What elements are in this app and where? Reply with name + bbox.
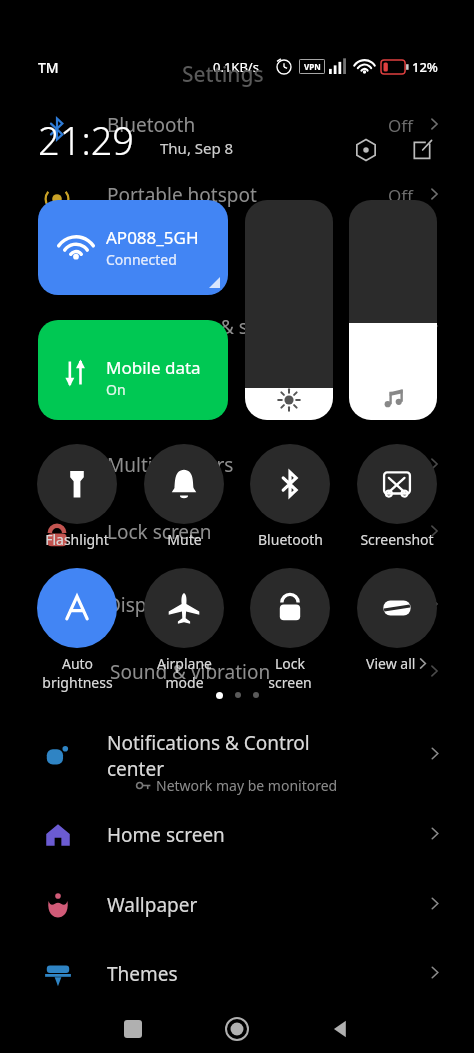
button[interactable]: Bluetooth	[250, 444, 330, 549]
staticText: Mute	[167, 530, 202, 549]
button[interactable]: View all	[357, 568, 437, 673]
staticText: Multiple users	[107, 452, 234, 478]
staticText: Sound & vibration	[110, 659, 271, 685]
button[interactable]: & sharing	[0, 310, 474, 350]
staticText: Bluetooth	[107, 112, 196, 138]
button[interactable]: AP088_5GH	[38, 200, 228, 295]
staticText: Screenshot	[360, 530, 434, 549]
button[interactable]: Lock screen	[0, 515, 474, 555]
button[interactable]: Flashlight	[37, 444, 117, 549]
staticText: Themes	[107, 961, 178, 987]
button[interactable]: Lock screen	[250, 568, 330, 692]
button[interactable]: Display	[0, 588, 474, 628]
staticText: Off	[388, 114, 413, 137]
button[interactable]: Mobile data	[38, 320, 228, 420]
staticText: Auto brightness	[42, 654, 113, 692]
button[interactable]: Wallpaper	[0, 882, 474, 928]
staticText: Notifications & Control center	[107, 730, 310, 782]
button[interactable]: Back	[320, 1008, 362, 1050]
staticText: VPN	[304, 61, 321, 72]
button[interactable]: Multiple users	[0, 448, 474, 488]
button[interactable]: Airplane mode	[144, 568, 224, 692]
button[interactable]: Notifications & Control center	[0, 726, 474, 790]
staticText: 12%	[412, 58, 438, 76]
button[interactable]: Recents	[112, 1008, 154, 1050]
button[interactable]: Sound & vibration	[0, 655, 474, 695]
staticText: 21:29	[38, 114, 135, 166]
button[interactable]: Bluetooth	[0, 108, 474, 148]
staticText: View all	[366, 654, 416, 673]
staticText: Airplane mode	[157, 654, 212, 692]
button[interactable]: Screenshot	[357, 444, 437, 549]
staticText: Flashlight	[45, 530, 109, 549]
staticText: 0.1KB/s	[213, 58, 259, 76]
button[interactable]: Edit	[406, 134, 438, 166]
staticText: Thu, Sep 8	[160, 138, 234, 158]
button[interactable]: Portable hotspot	[0, 178, 474, 218]
staticText: Display	[107, 592, 172, 618]
button[interactable]: Home	[216, 1008, 258, 1050]
staticText: Home screen	[107, 822, 225, 848]
staticText: Mobile data	[106, 356, 201, 379]
staticText: On	[106, 380, 126, 399]
button[interactable]: Mute	[144, 444, 224, 549]
staticText: Network may be monitored	[156, 776, 338, 795]
staticText: Lock screen	[268, 654, 312, 692]
staticText: Off	[388, 184, 413, 207]
staticText: Connected	[106, 250, 177, 269]
button[interactable]: Themes	[0, 951, 474, 997]
staticText: & sharing	[220, 314, 307, 340]
button[interactable]: Auto brightness	[37, 568, 117, 692]
staticText: Lock screen	[107, 519, 212, 545]
staticText: Settings	[182, 60, 264, 89]
staticText: AP088_5GH	[106, 226, 199, 249]
staticText: Portable hotspot	[107, 182, 257, 208]
staticText: Wallpaper	[107, 892, 198, 918]
button[interactable]: Brightness	[245, 200, 333, 420]
staticText: Bluetooth	[258, 530, 323, 549]
button[interactable]: Settings	[350, 134, 382, 166]
button[interactable]: Volume	[349, 200, 437, 420]
button[interactable]: Home screen	[0, 812, 474, 858]
staticText: TM	[38, 58, 59, 77]
